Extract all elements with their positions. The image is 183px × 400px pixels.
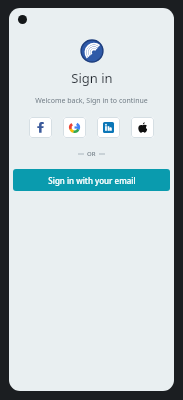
button[interactable]: Sign in with Google: [63, 117, 86, 138]
button[interactable]: Sign in with Facebook: [29, 117, 52, 138]
staticText: OR: [87, 150, 96, 158]
staticText: Sign in: [71, 69, 113, 87]
staticText: Welcome back, Sign in to continue: [35, 96, 148, 106]
button[interactable]: Sign in with your email: [13, 169, 170, 191]
button[interactable]: Sign in with Apple: [131, 117, 154, 138]
button[interactable]: Sign in with LinkedIn: [97, 117, 120, 138]
staticText: Sign in with your email: [48, 175, 136, 186]
